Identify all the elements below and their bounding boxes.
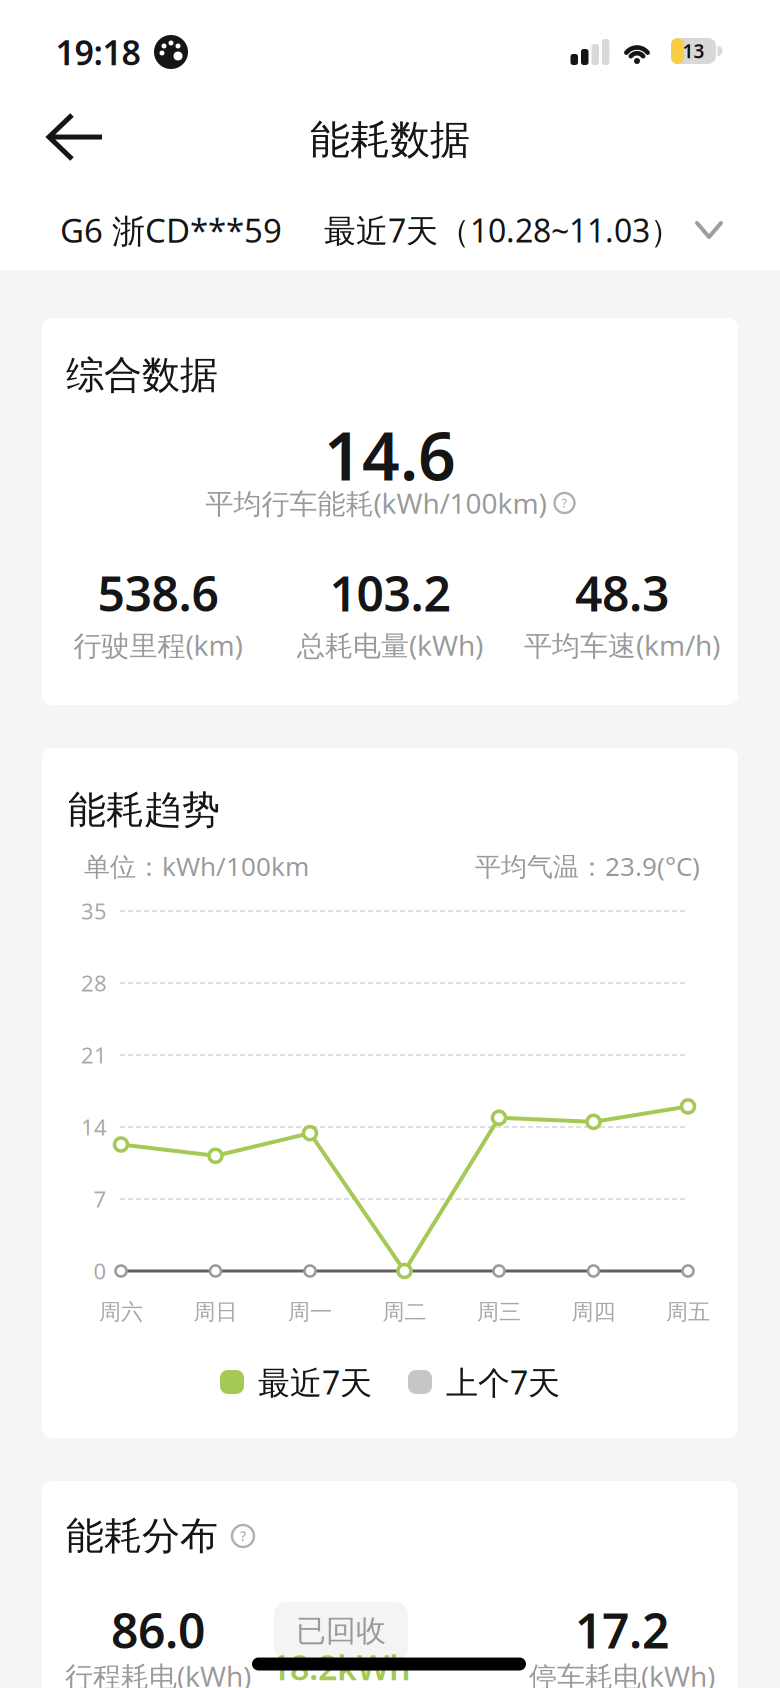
staticText: 周二	[382, 1298, 426, 1326]
staticText: 停车耗电(kWh)	[529, 1657, 715, 1688]
staticText: 总耗电量(kWh)	[297, 626, 483, 664]
staticText: 21	[81, 1040, 107, 1070]
staticText: 能耗趋势	[68, 786, 220, 834]
staticText: 平均气温：23.9(°C)	[475, 848, 700, 884]
staticText: 周一	[288, 1298, 332, 1326]
staticText: 周六	[99, 1298, 143, 1326]
staticText: 538.6	[97, 560, 218, 626]
button[interactable]: 说明	[232, 1525, 254, 1547]
staticText: 13	[682, 38, 704, 64]
staticText: 周三	[477, 1298, 521, 1326]
staticText: 行驶里程(km)	[73, 626, 242, 664]
staticText: 14	[81, 1112, 107, 1142]
staticText: 86.0	[111, 1597, 205, 1663]
staticText: 103.2	[329, 560, 450, 626]
staticText: 平均车速(km/h)	[524, 626, 720, 664]
staticText: 0	[93, 1256, 106, 1286]
staticText: 28	[81, 968, 107, 998]
button[interactable]: 返回	[28, 100, 122, 174]
staticText: 周四	[571, 1298, 615, 1326]
staticText: 综合数据	[66, 351, 218, 399]
staticText: 行程耗电(kWh)	[65, 1657, 251, 1688]
staticText: G6 浙CD***59	[60, 207, 282, 253]
staticText: 最近7天	[258, 1360, 372, 1404]
staticText: 35	[81, 896, 107, 926]
button[interactable]: 说明	[554, 493, 574, 513]
staticText: 周日	[193, 1298, 237, 1326]
staticText: 能耗分布	[66, 1512, 218, 1560]
staticText: 18.2kWh	[271, 1644, 411, 1688]
staticText: 19:18	[55, 29, 140, 75]
staticText: 最近7天（10.28~11.03）	[324, 208, 682, 252]
staticText: 7	[93, 1184, 106, 1214]
staticText: 上个7天	[446, 1360, 560, 1404]
staticText: ?	[561, 495, 567, 511]
staticText: 周五	[666, 1298, 710, 1326]
staticText: 平均行车能耗(kWh/100km)	[205, 484, 546, 522]
staticText: 17.2	[575, 1597, 669, 1663]
staticText: 14.6	[324, 410, 456, 500]
staticText: 单位：kWh/100km	[84, 848, 309, 884]
button[interactable]: 最近7天（10.28~11.03）	[324, 208, 722, 252]
staticText: 已回收	[296, 1612, 386, 1650]
staticText: ?	[240, 1527, 246, 1545]
staticText: 能耗数据	[310, 115, 470, 165]
staticText: 48.3	[575, 560, 669, 626]
